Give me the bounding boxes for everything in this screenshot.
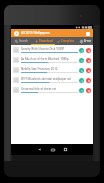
button[interactable]: Pause download — [79, 78, 84, 83]
staticText: As Much as it Hurts Bluebird 1080p — [21, 57, 69, 61]
staticText: B1FS Bluebird calendar wallpaper ad — [21, 77, 71, 81]
button[interactable]: Pause download — [79, 88, 84, 93]
button[interactable]: Pause download — [79, 48, 84, 53]
button[interactable]: Back — [33, 144, 46, 155]
button[interactable]: B1FS Bluebird calendar wallpaper ad — [11, 75, 93, 85]
button[interactable]: Download — [32, 37, 55, 45]
button[interactable]: Home — [46, 144, 59, 155]
button[interactable]: Cancel download — [86, 78, 91, 83]
staticText: Download — [39, 39, 53, 43]
staticText: Universal title of sheet art — [21, 87, 56, 91]
button[interactable]: Recent apps — [59, 144, 72, 155]
button[interactable]: Pause download — [79, 68, 84, 73]
staticText: Complete — [61, 39, 75, 43]
button[interactable]: As Much as it Hurts Bluebird 1080p — [11, 55, 93, 65]
button[interactable]: Cancel download — [86, 88, 91, 93]
button[interactable]: More options — [84, 30, 91, 37]
button[interactable]: Universal title of sheet art — [11, 85, 93, 95]
staticText: Gravity With Ubuntu Disk 1080P wallpaper — [21, 47, 78, 51]
button[interactable]: Cancel download — [86, 68, 91, 73]
staticText: Nebilla Star Francisco 2012 — [21, 67, 58, 71]
button[interactable]: Cancel download — [86, 58, 91, 63]
button[interactable]: Search — [11, 37, 32, 45]
button[interactable]: Nebilla Star Francisco 2012 — [11, 65, 93, 75]
staticText: Search — [19, 39, 29, 43]
button[interactable]: App logo — [14, 31, 19, 36]
button[interactable]: Pause download — [79, 58, 84, 63]
button[interactable]: Error — [77, 37, 93, 45]
button[interactable]: Gravity With Ubuntu Disk 1080P wallpaper — [11, 45, 93, 55]
staticText: All 2015 Wallpapers — [21, 31, 50, 35]
staticText: Error — [84, 39, 91, 43]
button[interactable]: Cancel download — [86, 48, 91, 53]
button[interactable]: Complete — [55, 37, 77, 45]
